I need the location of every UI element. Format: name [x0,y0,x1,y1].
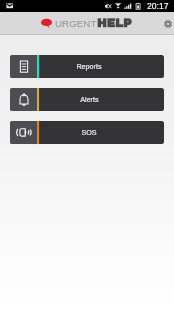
button[interactable]: Reports [10,55,164,78]
button[interactable]: Settings [157,16,173,32]
button[interactable]: Alerts [10,88,164,111]
button[interactable]: SOS [10,121,164,144]
staticText: URGENT [55,18,97,29]
staticText: Reports [76,62,102,70]
staticText: SOS [81,128,97,136]
staticText: Alerts [80,95,99,103]
staticText: HELP [97,17,132,30]
staticText: 20:17 [147,1,169,11]
